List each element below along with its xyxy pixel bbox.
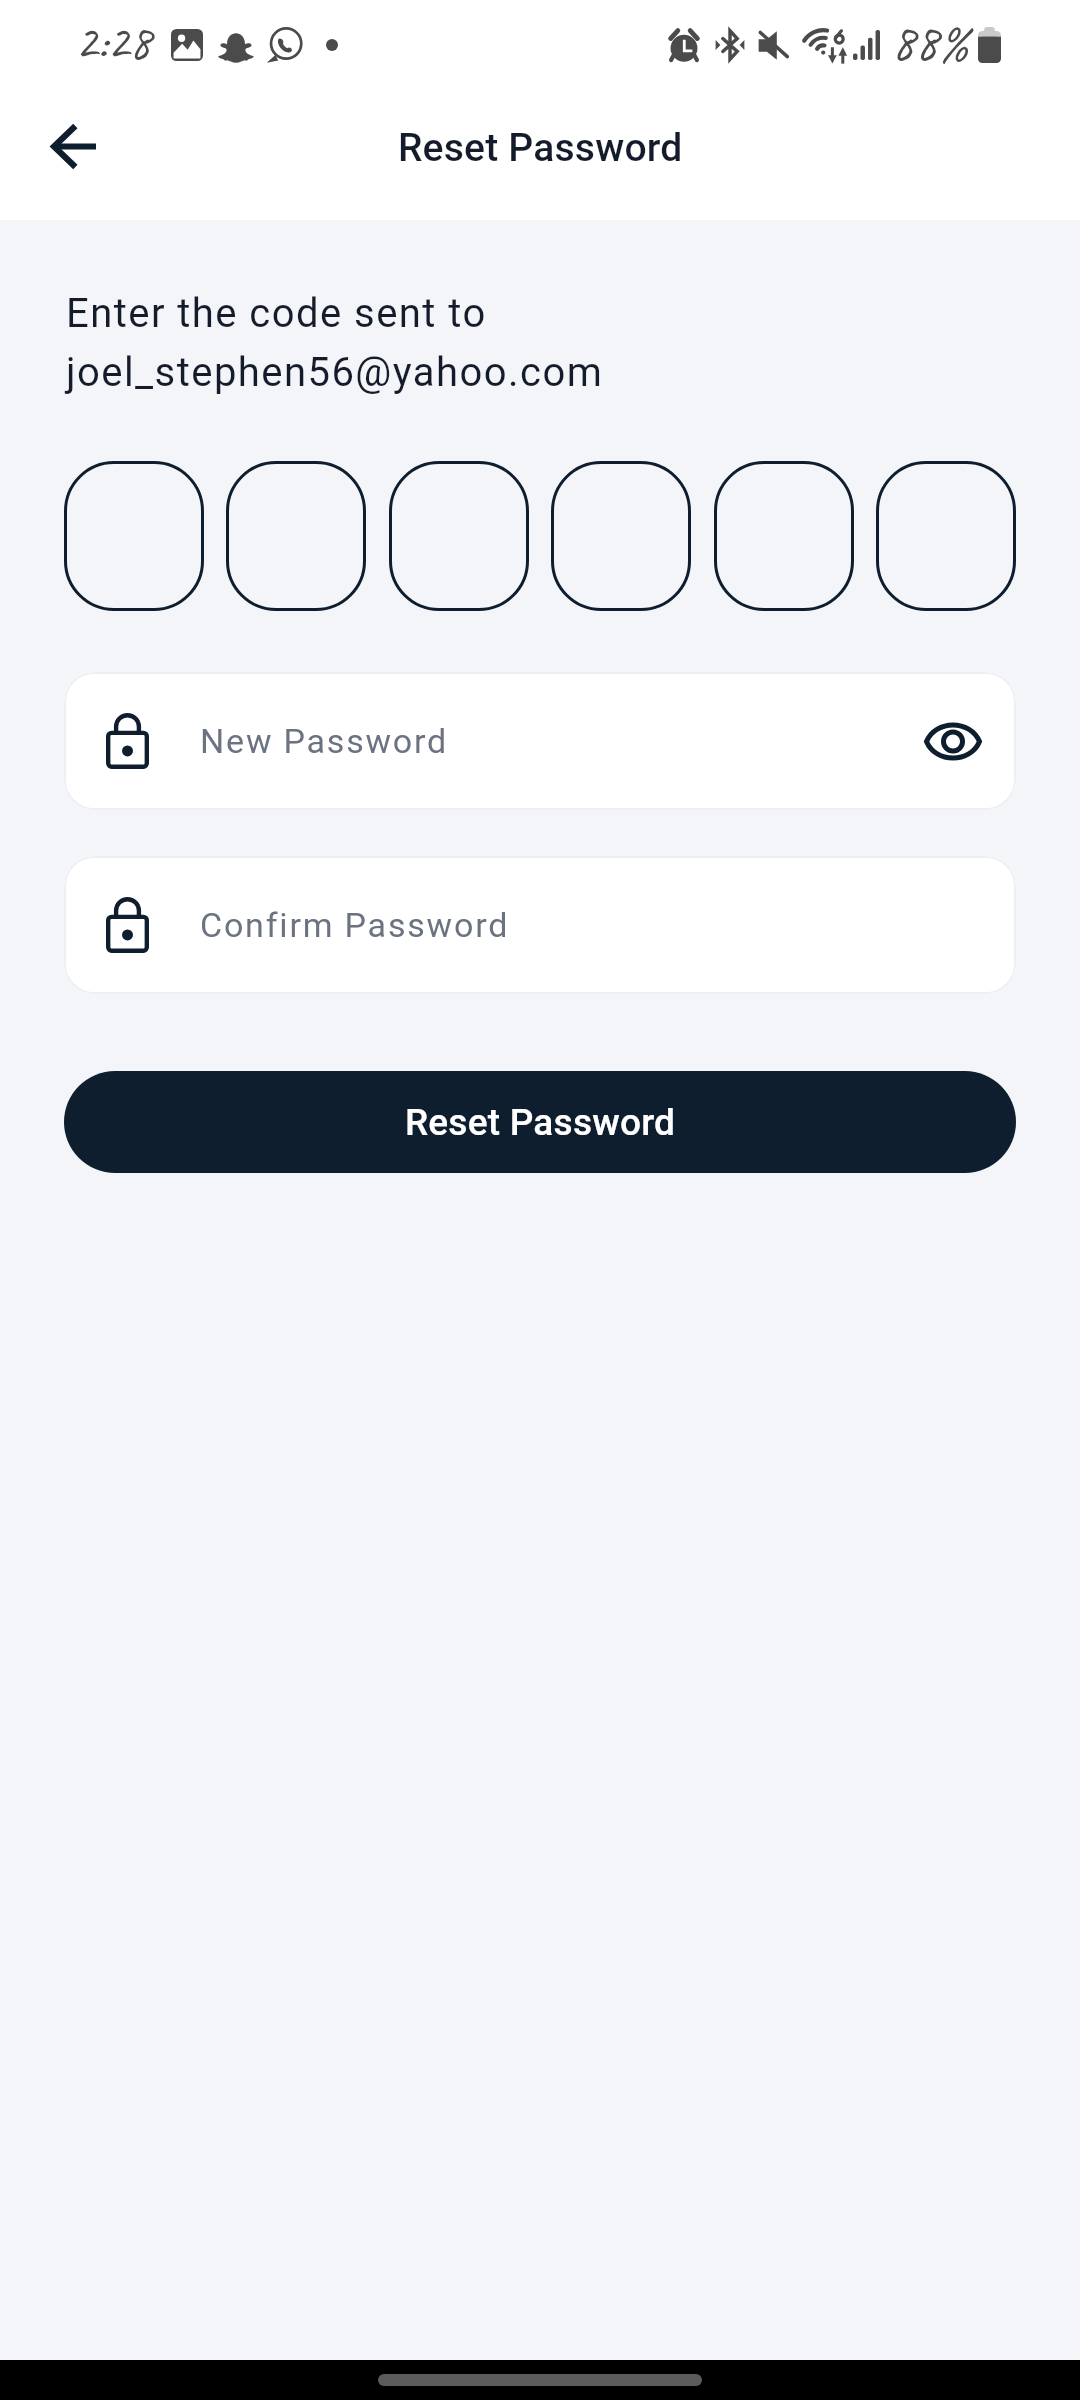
button[interactable]: Back <box>33 105 115 187</box>
staticText: Reset Password <box>398 125 683 171</box>
staticText: New Password <box>200 721 449 761</box>
staticText: 88% <box>891 9 970 75</box>
button[interactable]: Confirm Password <box>64 856 1016 994</box>
button[interactable]: New Password <box>64 672 1016 810</box>
staticText: Confirm Password <box>200 905 510 945</box>
button[interactable]: Code digit <box>389 461 529 611</box>
button[interactable]: Code digit <box>64 461 204 611</box>
button[interactable]: Show password <box>915 703 991 779</box>
staticText: 2:28 <box>75 11 151 73</box>
button[interactable]: Code digit <box>226 461 366 611</box>
button[interactable]: Reset Password <box>64 1071 1016 1173</box>
button[interactable]: Code digit <box>551 461 691 611</box>
staticText: Reset Password <box>405 1101 676 1144</box>
staticText: Enter the code sent to joel_stephen56@ya… <box>66 290 604 395</box>
button[interactable]: Code digit <box>876 461 1016 611</box>
button[interactable]: Code digit <box>714 461 854 611</box>
